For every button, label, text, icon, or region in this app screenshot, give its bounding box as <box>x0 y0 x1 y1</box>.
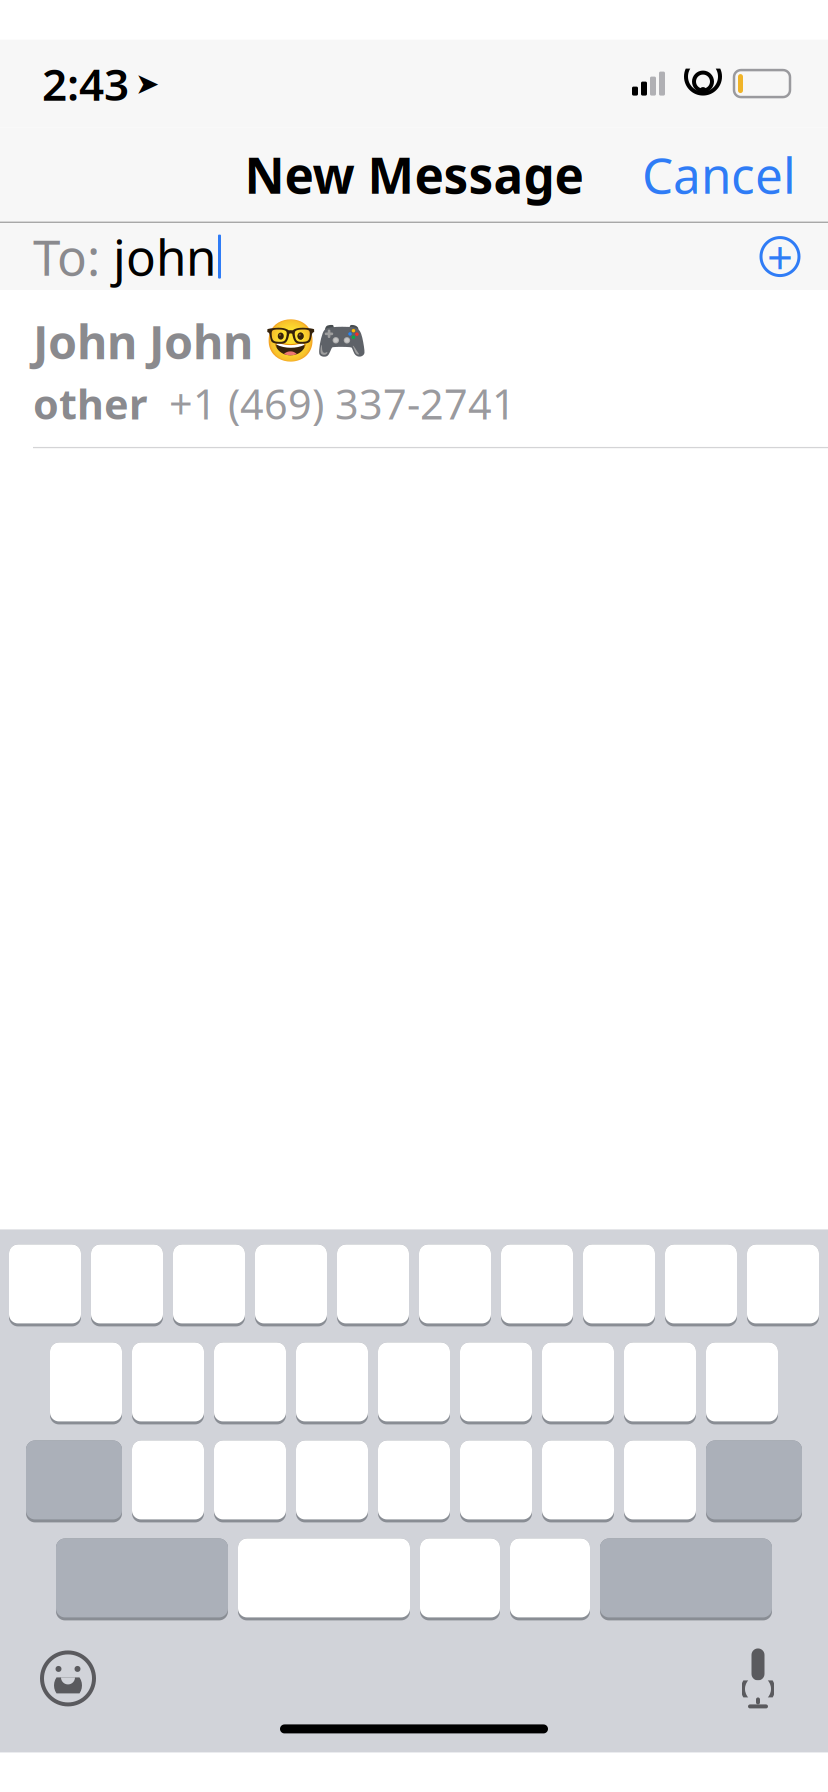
button[interactable]: p <box>747 1244 819 1326</box>
staticText: ➤ <box>135 67 160 100</box>
button[interactable]: j <box>542 1342 614 1424</box>
button[interactable]: Shift <box>26 1440 122 1522</box>
staticText: + <box>767 226 793 287</box>
staticText: john <box>100 224 216 289</box>
button[interactable]: o <box>665 1244 737 1326</box>
staticText: John John <box>33 310 265 372</box>
button[interactable]: z <box>132 1440 204 1522</box>
staticText: 🤓🎮 <box>265 317 367 365</box>
button[interactable]: q <box>9 1244 81 1326</box>
button[interactable]: i <box>583 1244 655 1326</box>
staticText: 2:43 <box>42 54 129 113</box>
button[interactable]: u <box>501 1244 573 1326</box>
button[interactable]: c <box>296 1440 368 1522</box>
button[interactable]: Dictate <box>720 1640 796 1716</box>
button[interactable]: v <box>378 1440 450 1522</box>
button[interactable]: f <box>296 1342 368 1424</box>
button[interactable]: s <box>132 1342 204 1424</box>
button[interactable]: w <box>91 1244 163 1326</box>
button[interactable]: d <box>214 1342 286 1424</box>
staticText: New Message <box>244 142 583 207</box>
staticText: To: <box>33 224 100 289</box>
button[interactable]: 123 <box>56 1538 228 1620</box>
button[interactable]: r <box>255 1244 327 1326</box>
button[interactable]: @ <box>420 1538 500 1620</box>
button[interactable]: b <box>460 1440 532 1522</box>
button[interactable]: a <box>50 1342 122 1424</box>
staticText: Cancel <box>642 142 796 207</box>
button[interactable]: k <box>624 1342 696 1424</box>
button[interactable]: John John <box>0 290 828 448</box>
button[interactable]: Add contact <box>750 227 810 287</box>
button[interactable]: return <box>600 1538 772 1620</box>
staticText: +1 (469) 337-2741 <box>147 376 516 431</box>
button[interactable]: Cancel <box>628 130 810 219</box>
button[interactable]: e <box>173 1244 245 1326</box>
button[interactable]: h <box>460 1342 532 1424</box>
button[interactable]: Emoji <box>30 1640 106 1716</box>
button[interactable]: m <box>624 1440 696 1522</box>
button[interactable]: . <box>510 1538 590 1620</box>
button[interactable]: l <box>706 1342 778 1424</box>
staticText: other <box>33 376 147 431</box>
button[interactable]: g <box>378 1342 450 1424</box>
button[interactable]: space <box>238 1538 410 1620</box>
button[interactable]: t <box>337 1244 409 1326</box>
button[interactable]: n <box>542 1440 614 1522</box>
button[interactable]: y <box>419 1244 491 1326</box>
button[interactable]: Delete <box>706 1440 802 1522</box>
button[interactable]: x <box>214 1440 286 1522</box>
